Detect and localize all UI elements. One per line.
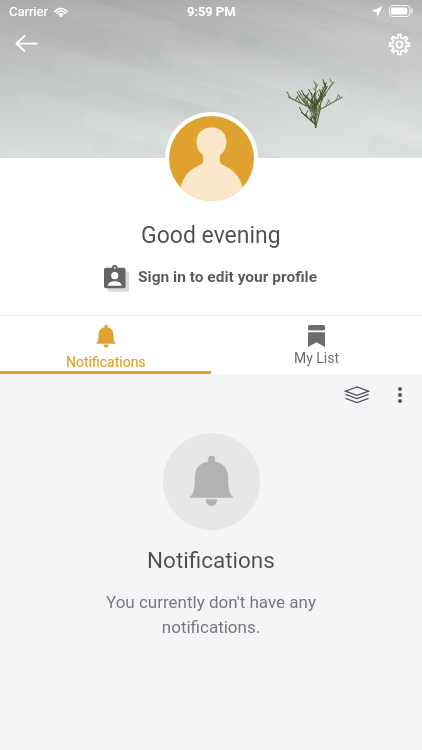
button[interactable]: Notifications xyxy=(0,316,211,370)
staticText: Notifications xyxy=(147,547,275,573)
staticText: 9:59 PM xyxy=(187,4,236,19)
staticText: My List xyxy=(294,350,340,366)
button[interactable]: Profile photo xyxy=(165,112,258,205)
button[interactable]: Sign in to edit your profile xyxy=(94,258,328,295)
button[interactable]: Layers xyxy=(338,378,375,411)
button[interactable]: Settings xyxy=(377,22,421,66)
staticText: Notifications xyxy=(66,354,146,370)
staticText: You currently don't have any notificatio… xyxy=(86,592,336,637)
staticText: Good evening xyxy=(141,222,281,249)
staticText: Sign in to edit your profile xyxy=(138,268,318,286)
staticText: Carrier xyxy=(9,4,48,19)
button[interactable]: More options xyxy=(381,378,418,411)
button[interactable]: My List xyxy=(211,316,422,366)
button[interactable]: Back xyxy=(3,20,49,66)
